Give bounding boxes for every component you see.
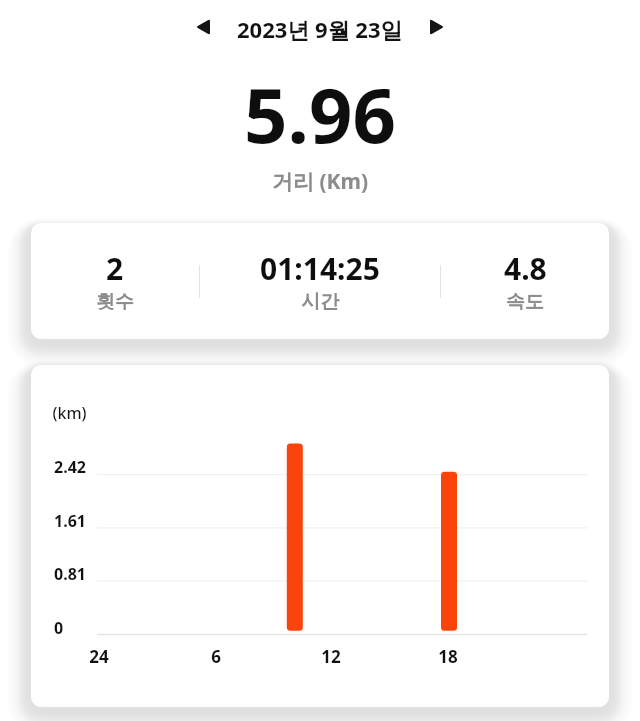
staticText: 6	[211, 645, 221, 668]
staticText: 거리 (Km)	[0, 167, 640, 196]
button[interactable]: Next day	[417, 11, 453, 47]
staticText: 12	[321, 645, 341, 668]
button[interactable]: Previous day	[187, 11, 223, 47]
staticText: 횟수	[96, 290, 134, 314]
staticText: 01:14:25	[260, 248, 380, 289]
staticText: 0.81	[54, 563, 86, 585]
staticText: (km)	[52, 402, 87, 424]
staticText: 0	[54, 617, 64, 639]
staticText: 시간	[301, 290, 339, 314]
staticText: 2.42	[54, 456, 86, 478]
staticText: 속도	[506, 290, 544, 314]
staticText: 2	[106, 248, 124, 289]
staticText: 24	[89, 645, 109, 668]
staticText: 18	[438, 645, 458, 668]
button[interactable]: Daily distance chart	[31, 365, 609, 707]
staticText: 1.61	[54, 510, 86, 532]
staticText: 2023년 9월 23일	[237, 14, 403, 44]
staticText: 5.96	[0, 62, 640, 166]
staticText: 4.8	[504, 248, 547, 289]
button[interactable]: 2	[31, 223, 609, 339]
